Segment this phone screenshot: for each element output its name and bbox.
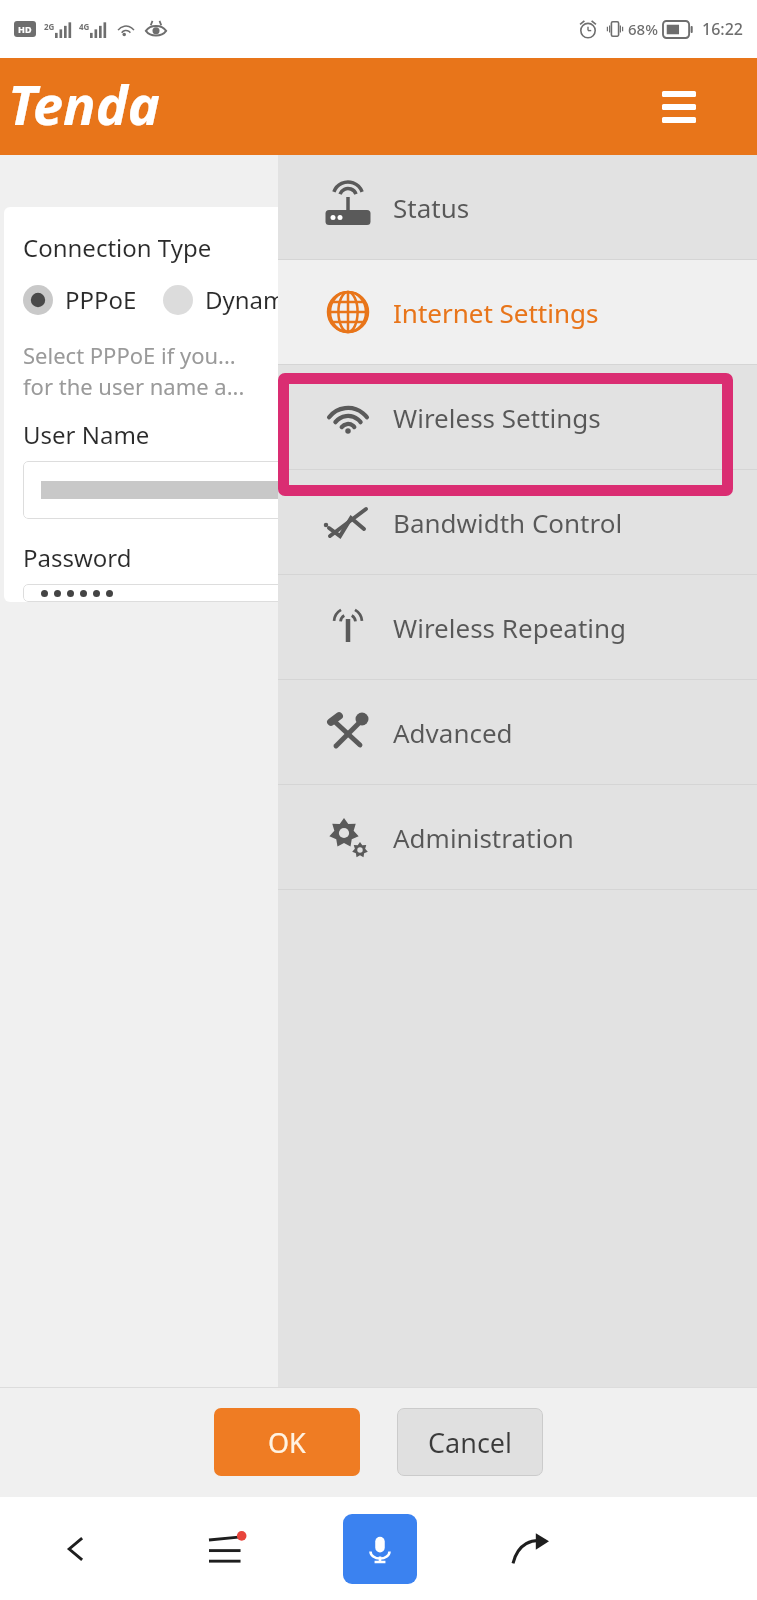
staticText: Dynamic IP [205, 283, 333, 316]
button[interactable]: Cancel [397, 1408, 543, 1476]
staticText: User Name [23, 418, 150, 451]
staticText: PPPoE [65, 283, 137, 316]
button[interactable]: Back [0, 1497, 152, 1600]
button[interactable]: Menu [152, 1497, 304, 1600]
staticText: Internet Settings [393, 295, 599, 330]
staticText: Bandwidth Control [393, 505, 623, 540]
staticText: HD [18, 23, 32, 35]
button[interactable]: PPPoE [23, 283, 137, 316]
staticText: 16:22 [702, 18, 743, 40]
button[interactable]: OK [214, 1408, 360, 1476]
button[interactable]: Bandwidth Control [278, 470, 757, 574]
button[interactable]: Share [455, 1497, 606, 1600]
staticText: Select PPPoE if you... for the user name… [23, 340, 245, 402]
staticText: 4G [79, 21, 90, 32]
staticText: Status [393, 190, 470, 225]
button[interactable]: Advanced [278, 680, 757, 784]
button[interactable]: Dynamic IP [163, 283, 333, 316]
staticText: Wireless Settings [393, 400, 601, 435]
staticText: Advanced [393, 715, 513, 750]
button[interactable]: Wireless Settings [278, 365, 757, 469]
button[interactable]: Administration [278, 785, 757, 889]
button[interactable] [23, 461, 702, 519]
button[interactable] [23, 584, 702, 602]
staticText: 2G [44, 21, 55, 32]
staticText: Wireless Repeating [393, 610, 627, 645]
button[interactable]: Wireless Repeating [278, 575, 757, 679]
button[interactable]: Internet Settings [278, 260, 757, 364]
button[interactable]: Voice search [343, 1514, 417, 1584]
staticText: 68% [628, 19, 658, 39]
button[interactable]: Status [278, 155, 757, 259]
staticText: Tenda [8, 67, 160, 141]
staticText: OK [268, 1424, 306, 1461]
button[interactable]: Menu [654, 84, 704, 130]
staticText: Password [23, 541, 132, 574]
staticText: Administration [393, 820, 574, 855]
staticText: Connection Type [23, 231, 212, 264]
staticText: Cancel [428, 1424, 513, 1461]
